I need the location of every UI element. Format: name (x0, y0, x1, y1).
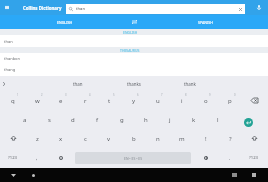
button[interactable]: u (146, 91, 170, 110)
staticText: y (132, 97, 136, 105)
button[interactable]: Hide keyboard (6, 168, 20, 182)
button[interactable]: s (37, 110, 61, 129)
button[interactable]: z (25, 129, 49, 148)
button[interactable]: p (218, 91, 242, 110)
button[interactable]: thang (0, 64, 268, 75)
button[interactable]: than (50, 76, 106, 91)
button[interactable]: w (25, 91, 49, 110)
staticText: b (132, 135, 136, 143)
button[interactable]: ? (218, 129, 242, 148)
staticText: w (35, 97, 40, 105)
staticText: x (59, 135, 63, 143)
staticText: d (71, 116, 75, 124)
button[interactable]: l (206, 110, 230, 129)
staticText: j (169, 116, 171, 124)
staticText: Collins Dictionary (23, 5, 62, 11)
button[interactable]: Recent apps (247, 168, 261, 182)
button[interactable]: c (73, 129, 97, 148)
button[interactable]: ?123 (242, 148, 266, 167)
staticText: 5 (113, 93, 115, 97)
button[interactable]: j (158, 110, 182, 129)
staticText: p (228, 97, 232, 105)
button[interactable]: Language settings (194, 148, 218, 167)
staticText: , (36, 154, 38, 161)
staticText: 8 (185, 93, 187, 97)
button[interactable]: Change keyboard (227, 168, 241, 182)
staticText: 7 (161, 93, 163, 97)
button[interactable]: Shift (242, 129, 266, 148)
button[interactable]: Enter (236, 110, 260, 134)
button[interactable]: EN • ES • ES (75, 152, 191, 164)
button[interactable]: More suggestions (0, 76, 8, 91)
staticText: thang (4, 67, 16, 72)
button[interactable]: k (182, 110, 206, 129)
staticText: n (156, 135, 160, 143)
button[interactable]: v (97, 129, 121, 148)
button[interactable]: e (49, 91, 73, 110)
button[interactable]: thank (162, 76, 218, 91)
staticText: l (217, 116, 219, 124)
button[interactable]: n (146, 129, 170, 148)
button[interactable]: d (61, 110, 85, 129)
staticText: THESAURUS (120, 48, 140, 53)
staticText: thank (184, 81, 196, 87)
staticText: than (76, 6, 86, 12)
staticText: than (4, 39, 13, 44)
staticText: f (96, 116, 99, 124)
button[interactable]: than (66, 4, 245, 14)
button[interactable]: t (97, 91, 121, 110)
staticText: r (84, 97, 87, 105)
button[interactable]: , (25, 148, 49, 167)
button[interactable]: Voice search (252, 0, 266, 15)
staticText: ! (205, 135, 207, 143)
staticText: k (192, 116, 196, 124)
button[interactable]: Clear query (236, 5, 245, 14)
staticText: q (11, 97, 15, 105)
staticText: z (36, 135, 39, 143)
button[interactable]: thanbon (0, 53, 268, 64)
button[interactable]: m (170, 129, 194, 148)
button[interactable]: b (122, 129, 146, 148)
button[interactable]: f (85, 110, 109, 129)
staticText: v (107, 135, 111, 143)
button[interactable]: thanks (106, 76, 162, 91)
button[interactable]: a (13, 110, 37, 129)
button[interactable]: g (110, 110, 134, 129)
staticText: ENGLISH (123, 30, 138, 35)
staticText: 3 (65, 93, 67, 97)
button[interactable]: than (0, 35, 268, 47)
button[interactable]: Home (26, 168, 40, 182)
staticText: e (59, 97, 63, 105)
staticText: than (73, 81, 83, 87)
staticText: a (23, 116, 27, 124)
button[interactable]: ?123 (1, 148, 25, 167)
staticText: m (179, 135, 185, 143)
staticText: thanks (127, 81, 141, 87)
button[interactable]: ! (194, 129, 218, 148)
staticText: SPANISH (198, 20, 213, 25)
staticText: ? (229, 135, 232, 143)
button[interactable]: Shift (1, 129, 25, 148)
staticText: ENGLISH (57, 20, 73, 25)
staticText: ?123 (8, 155, 18, 161)
button[interactable]: q (1, 91, 25, 110)
button[interactable]: r (73, 91, 97, 110)
staticText: 1 (17, 93, 19, 97)
button[interactable]: SPANISH (140, 15, 268, 29)
button[interactable]: Emoji (49, 148, 73, 167)
staticText: EN • ES • ES (124, 156, 143, 161)
button[interactable]: h (134, 110, 158, 129)
staticText: i (181, 97, 183, 105)
button[interactable]: i (170, 91, 194, 110)
button[interactable]: y (122, 91, 146, 110)
button[interactable]: ENGLISH (0, 15, 130, 29)
button[interactable]: o (194, 91, 218, 110)
staticText: 0 (234, 93, 236, 97)
button[interactable]: Swap languages (128, 15, 140, 29)
staticText: s (48, 116, 51, 124)
button[interactable]: Backspace (242, 91, 266, 110)
staticText: thanbon (4, 56, 20, 61)
button[interactable]: x (49, 129, 73, 148)
button[interactable]: Navigation menu (1, 0, 13, 15)
